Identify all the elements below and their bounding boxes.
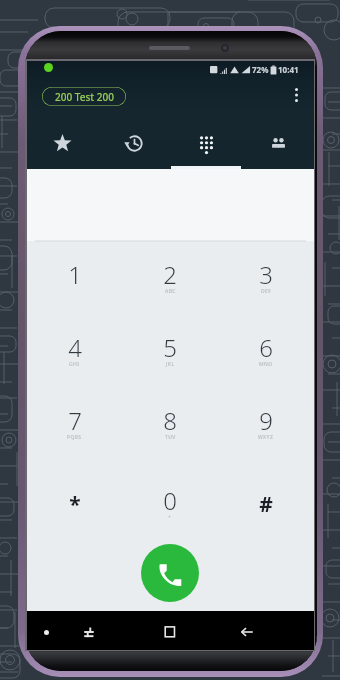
staticText: MNO [259,361,273,368]
button[interactable]: 2 [122,251,218,303]
staticText: JKL [166,361,175,368]
staticText: 6 [259,331,273,364]
button[interactable]: More options [282,81,310,109]
staticText: 10:41 [278,64,299,75]
button[interactable]: 7 [27,397,122,449]
staticText: DEF [261,288,272,295]
staticText: TUV [165,434,176,441]
staticText: 7 [68,404,82,437]
staticText: 4 [68,331,82,364]
staticText: WXYZ [258,434,274,441]
staticText: 8 [163,404,177,437]
staticText: * [69,490,81,519]
staticText: ABC [165,288,176,295]
button[interactable]: 0 [122,477,218,529]
button[interactable]: Recents [98,112,170,169]
staticText: 2 [163,258,177,291]
button[interactable]: 5 [122,324,218,376]
button[interactable]: Call [141,544,199,602]
button[interactable]: 3 [218,251,314,303]
button[interactable]: Dialpad [170,112,242,169]
staticText: # [259,490,273,519]
staticText: 1 [68,258,82,291]
staticText: 5 [163,331,177,364]
button[interactable]: # [218,477,314,529]
button[interactable]: 9 [218,397,314,449]
staticText: 9 [259,404,273,437]
button[interactable]: Contacts [242,112,314,169]
button[interactable]: 200 Test 200 [42,87,126,106]
staticText: 72% [252,64,269,75]
button[interactable]: 6 [218,324,314,376]
button[interactable]: 1 [27,251,122,303]
staticText: PQRS [67,434,82,441]
staticText: 3 [259,258,273,291]
staticText: + [168,514,172,521]
staticText: 0 [163,484,177,517]
button[interactable]: * [27,477,122,529]
button[interactable]: Favourites [27,112,98,169]
button[interactable]: 4 [27,324,122,376]
button[interactable]: Back [239,624,255,640]
staticText: 200 Test 200 [55,90,114,104]
button[interactable]: Recents [81,624,97,640]
button[interactable]: Home [162,624,178,640]
button[interactable]: 8 [122,397,218,449]
staticText: GHI [69,361,80,368]
